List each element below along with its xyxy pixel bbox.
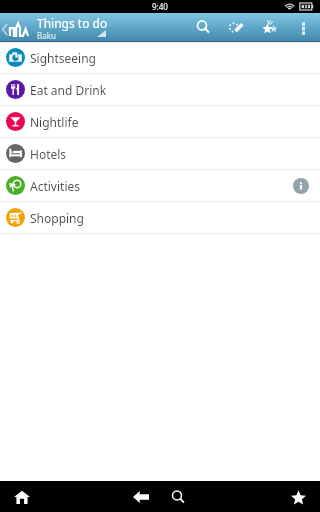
button[interactable]: My reviews xyxy=(253,13,286,41)
staticText: Hotels xyxy=(30,146,67,162)
staticText: Activities xyxy=(30,178,80,194)
staticText: Sightseeing xyxy=(30,50,96,66)
button[interactable]: Hotels xyxy=(0,138,320,169)
button[interactable]: Shopping xyxy=(0,202,320,233)
button[interactable]: Search xyxy=(164,483,192,511)
button[interactable]: Information xyxy=(288,173,314,199)
staticText: Eat and Drink xyxy=(30,82,107,98)
staticText: 9:40 xyxy=(152,1,168,12)
button[interactable]: Activities xyxy=(0,170,320,201)
staticText: Baku xyxy=(37,30,56,41)
staticText: Shopping xyxy=(30,210,84,226)
button[interactable]: Home xyxy=(8,483,36,511)
button[interactable]: Nightlife xyxy=(0,106,320,137)
button[interactable]: Navigate up xyxy=(0,13,33,41)
staticText: Things to do xyxy=(37,15,108,31)
button[interactable]: Sightseeing xyxy=(0,42,320,73)
button[interactable]: More options xyxy=(286,13,320,41)
button[interactable]: Back xyxy=(127,483,155,511)
button[interactable]: Write a review xyxy=(220,13,253,41)
staticText: Nightlife xyxy=(30,114,79,130)
button[interactable]: Favorites xyxy=(284,483,312,511)
button[interactable]: Search xyxy=(187,13,220,41)
button[interactable]: Eat and Drink xyxy=(0,74,320,105)
